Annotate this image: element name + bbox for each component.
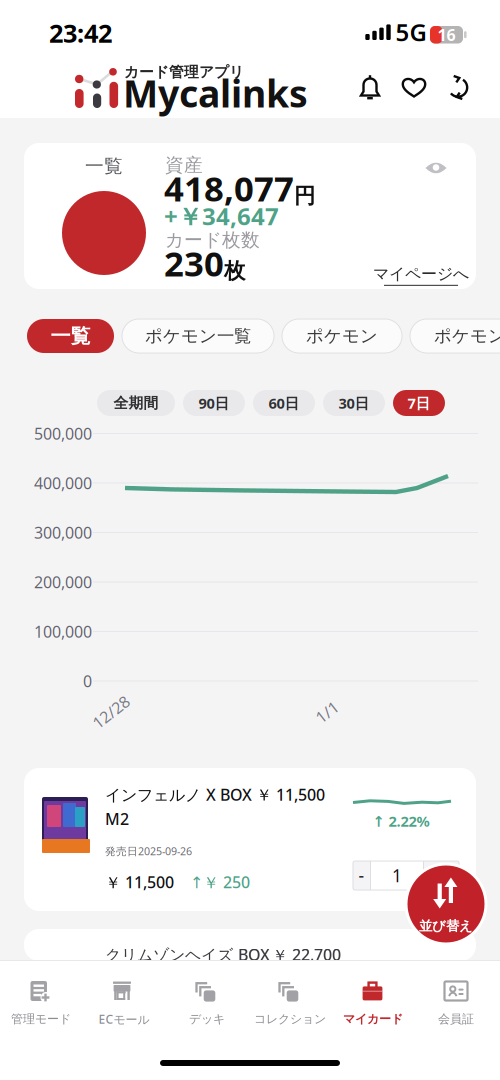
staticText: 7日 bbox=[407, 393, 430, 413]
staticText: 0 bbox=[83, 670, 92, 692]
button[interactable]: 7日 bbox=[393, 390, 445, 416]
staticText: マイページへ bbox=[373, 264, 469, 284]
staticText: 管理モード bbox=[11, 1012, 71, 1026]
staticText: デッキ bbox=[189, 1012, 225, 1026]
staticText: 418,077 bbox=[164, 165, 294, 211]
staticText: 一覧 bbox=[85, 154, 123, 177]
staticText: 一覧 bbox=[50, 324, 90, 348]
staticText: - bbox=[358, 864, 364, 887]
staticText: ￥ 11,500 bbox=[105, 871, 174, 893]
button[interactable]: - bbox=[353, 861, 370, 890]
staticText: 並び替え bbox=[419, 918, 473, 934]
staticText: ↑ 2.22% bbox=[372, 811, 429, 831]
button[interactable]: 並び替え bbox=[403, 861, 489, 947]
staticText: 16 bbox=[437, 24, 455, 45]
staticText: ↑￥ 250 bbox=[190, 871, 250, 893]
button[interactable]: 30日 bbox=[323, 390, 385, 416]
staticText: ポケモン bbox=[306, 325, 378, 347]
staticText: ポケモン一覧 bbox=[145, 325, 251, 347]
staticText: 400,000 bbox=[34, 472, 92, 494]
staticText: 12/28 bbox=[90, 701, 132, 723]
button[interactable]: 管理モード bbox=[0, 0, 500, 1080]
staticText: +￥34,647 bbox=[164, 200, 279, 232]
button[interactable]: 会員証 bbox=[0, 0, 500, 1080]
button[interactable]: マイカード bbox=[0, 0, 500, 1080]
button[interactable]: ポケモン一覧 bbox=[122, 319, 274, 353]
button[interactable]: ポケモン bbox=[282, 319, 402, 353]
staticText: 全期間 bbox=[113, 394, 158, 412]
staticText: 30日 bbox=[338, 393, 369, 413]
button[interactable]: マイページへ bbox=[373, 264, 469, 286]
staticText: 5G bbox=[395, 16, 426, 48]
button[interactable]: ポケモン bbox=[410, 319, 500, 353]
staticText: 円 bbox=[294, 183, 315, 209]
staticText: カード管理アプリ bbox=[124, 63, 244, 81]
staticText: 60日 bbox=[268, 393, 299, 413]
staticText: 500,000 bbox=[34, 423, 92, 444]
staticText: 300,000 bbox=[34, 522, 92, 543]
button[interactable]: 一覧 bbox=[27, 319, 114, 353]
button[interactable]: 60日 bbox=[253, 390, 315, 416]
staticText: マイカード bbox=[343, 1012, 403, 1026]
staticText: M2 bbox=[105, 808, 129, 829]
staticText: 200,000 bbox=[34, 571, 92, 593]
staticText: 資産 bbox=[165, 153, 203, 176]
staticText: コレクション bbox=[254, 1012, 326, 1026]
staticText: 1/1 bbox=[315, 701, 339, 723]
staticText: 発売日2025-09-26 bbox=[105, 844, 192, 858]
staticText: 会員証 bbox=[438, 1012, 474, 1026]
button[interactable]: 90日 bbox=[183, 390, 245, 416]
staticText: クリムゾンヘイズ BOX bbox=[105, 944, 270, 965]
staticText: + bbox=[436, 864, 446, 887]
staticText: 90日 bbox=[198, 393, 229, 413]
staticText: ポケモン bbox=[434, 325, 500, 347]
button[interactable]: 資産を非表示 bbox=[425, 159, 447, 177]
staticText: ￥ 22,700 bbox=[272, 944, 341, 965]
button[interactable]: コレクション bbox=[0, 0, 500, 1080]
staticText: 23:42 bbox=[49, 16, 112, 50]
staticText: ECモール bbox=[98, 1011, 149, 1027]
staticText: 枚 bbox=[224, 258, 245, 284]
staticText: 100,000 bbox=[34, 621, 92, 642]
staticText: カード枚数 bbox=[165, 228, 260, 251]
button[interactable]: お気に入り bbox=[401, 74, 427, 100]
staticText: インフェルノ X BOX ￥ 11,500 bbox=[105, 784, 325, 805]
staticText: 230 bbox=[164, 240, 224, 286]
button[interactable]: 全期間 bbox=[97, 390, 175, 416]
button[interactable]: ECモール bbox=[0, 0, 500, 1080]
staticText: Mycalinks bbox=[123, 68, 308, 118]
button[interactable]: 更新 bbox=[445, 74, 471, 101]
button[interactable]: + bbox=[424, 861, 459, 890]
button[interactable]: 通知 bbox=[357, 74, 383, 100]
staticText: 1 bbox=[392, 864, 402, 887]
button[interactable]: デッキ bbox=[0, 0, 500, 1080]
